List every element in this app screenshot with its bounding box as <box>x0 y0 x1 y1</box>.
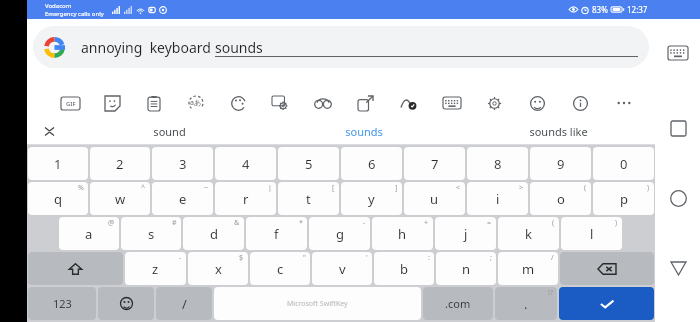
staticText: 5 <box>305 155 313 173</box>
staticText: ) <box>647 183 650 193</box>
button[interactable]: i <box>467 182 528 215</box>
button[interactable]: q <box>28 182 88 215</box>
button[interactable]: Recent apps <box>661 111 695 145</box>
button[interactable]: a <box>59 217 119 250</box>
button[interactable]: . <box>495 287 557 320</box>
staticText: o <box>557 190 565 208</box>
staticText: t <box>306 190 311 208</box>
button[interactable]: x <box>188 252 248 285</box>
button[interactable]: Handwriting <box>387 88 430 118</box>
staticText: ~ <box>204 183 209 193</box>
staticText: !? <box>548 288 553 298</box>
button[interactable]: Translate <box>175 88 217 118</box>
staticText: 12:37 <box>627 4 648 15</box>
button[interactable]: h <box>372 217 433 250</box>
button[interactable]: sounds <box>267 118 461 145</box>
button[interactable]: k <box>498 217 559 250</box>
staticText: $ <box>239 253 244 263</box>
staticText: r <box>243 190 249 208</box>
staticText: b <box>400 260 408 278</box>
button[interactable]: 5 <box>278 147 339 180</box>
button[interactable]: p <box>593 182 654 215</box>
button[interactable]: j <box>435 217 496 250</box>
button[interactable]: sound <box>72 118 267 145</box>
staticText: 3 <box>179 155 187 173</box>
button[interactable]: / <box>156 287 212 320</box>
staticText: < <box>456 183 461 193</box>
staticText: sounds <box>345 124 383 139</box>
button[interactable]: Back <box>661 251 695 285</box>
button[interactable]: w <box>90 182 150 215</box>
staticText: n <box>462 260 471 278</box>
staticText: p <box>620 190 628 208</box>
staticText: a <box>85 225 93 243</box>
button[interactable]: v <box>312 252 372 285</box>
button[interactable]: annoying keyboard <box>33 26 649 68</box>
button[interactable]: .com <box>423 287 493 320</box>
button[interactable]: Emoji <box>98 287 154 320</box>
button[interactable]: 123 <box>28 287 96 320</box>
button[interactable]: t <box>278 182 339 215</box>
button[interactable]: Hide keyboard <box>661 36 695 70</box>
button[interactable]: 3 <box>152 147 213 180</box>
staticText: ) <box>615 218 618 228</box>
button[interactable]: 9 <box>530 147 591 180</box>
button[interactable]: 1 <box>28 147 88 180</box>
staticText: / <box>551 253 554 263</box>
button[interactable]: m <box>498 252 558 285</box>
button[interactable]: Share <box>344 88 387 118</box>
button[interactable]: c <box>250 252 310 285</box>
staticText: sounds <box>215 38 263 57</box>
button[interactable]: Keyboard mode <box>430 88 473 118</box>
button[interactable]: Customize <box>259 88 301 118</box>
button[interactable]: f <box>246 217 307 250</box>
button[interactable]: u <box>404 182 465 215</box>
staticText: GIF <box>66 100 76 108</box>
button[interactable]: n <box>436 252 496 285</box>
button[interactable]: r <box>215 182 276 215</box>
button[interactable]: b <box>374 252 434 285</box>
button[interactable]: Enter <box>559 287 654 320</box>
staticText: [ <box>332 183 335 193</box>
button[interactable]: g <box>309 217 370 250</box>
button[interactable]: Space <box>214 287 421 320</box>
staticText: : <box>428 253 430 263</box>
button[interactable]: 6 <box>341 147 402 180</box>
button[interactable]: 4 <box>215 147 276 180</box>
button[interactable]: 8 <box>467 147 528 180</box>
button[interactable]: 0 <box>593 147 654 180</box>
button[interactable]: Settings <box>473 88 516 118</box>
button[interactable]: 2 <box>90 147 150 180</box>
staticText: 9 <box>557 155 565 173</box>
button[interactable]: Sticker <box>91 88 133 118</box>
button[interactable]: l <box>561 217 622 250</box>
button[interactable]: Incognito <box>301 88 344 118</box>
button[interactable]: y <box>341 182 402 215</box>
button[interactable]: Home <box>661 181 695 215</box>
button[interactable]: Info <box>559 88 602 118</box>
button[interactable]: More <box>602 88 645 118</box>
button[interactable]: o <box>530 182 591 215</box>
button[interactable]: z <box>125 252 186 285</box>
staticText: 2 <box>116 155 124 173</box>
button[interactable]: sounds like <box>461 118 655 145</box>
staticText: u <box>430 190 439 208</box>
button[interactable]: s <box>121 217 181 250</box>
staticText: 83% <box>592 4 608 15</box>
button[interactable]: 7 <box>404 147 465 180</box>
staticText: d <box>210 225 218 243</box>
button[interactable]: GIF <box>49 88 91 118</box>
button[interactable]: Theme <box>217 88 259 118</box>
staticText: sound <box>153 124 186 139</box>
button[interactable]: d <box>183 217 244 250</box>
staticText: ( <box>552 218 555 228</box>
button[interactable]: e <box>152 182 213 215</box>
button[interactable]: Emoji <box>516 88 559 118</box>
button[interactable]: Backspace <box>560 252 654 285</box>
staticText: 123 <box>53 296 72 311</box>
button[interactable]: Expand suggestions <box>27 118 72 145</box>
staticText: 7 <box>431 155 439 173</box>
button[interactable]: Shift <box>28 252 123 285</box>
button[interactable]: Clipboard <box>133 88 175 118</box>
staticText: = <box>487 218 492 228</box>
